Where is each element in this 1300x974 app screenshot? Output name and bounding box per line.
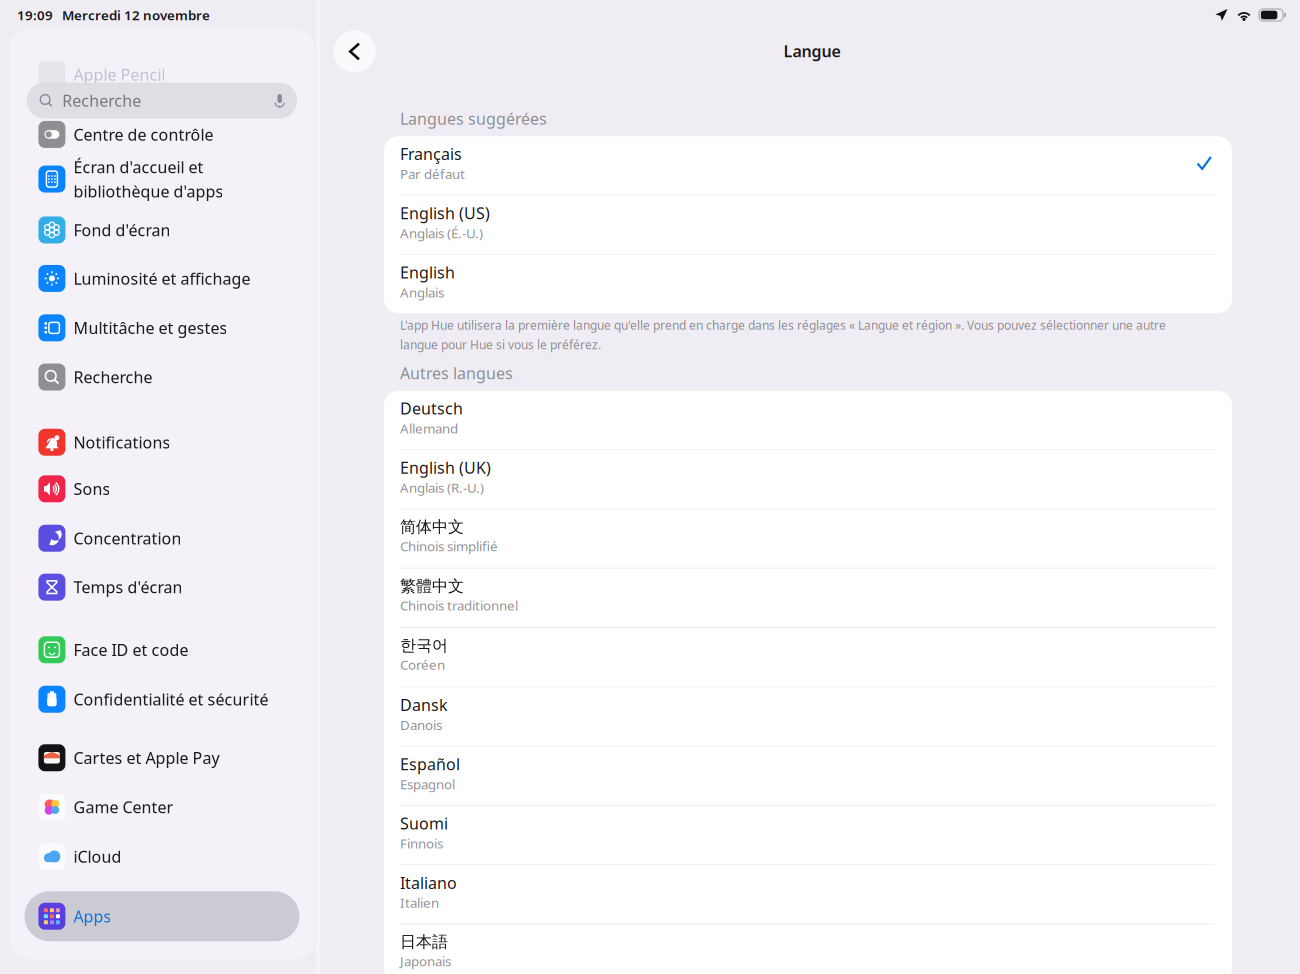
button[interactable]: Deutsch xyxy=(384,391,1232,449)
staticText: Recherche xyxy=(73,366,152,388)
staticText: Italiano xyxy=(400,872,457,893)
staticText: 19:09 xyxy=(17,6,53,24)
staticText: Concentration xyxy=(73,528,181,549)
staticText: Par défaut xyxy=(400,165,465,183)
staticText: 繁體中文 xyxy=(400,576,464,596)
staticText: Dansk xyxy=(400,694,448,715)
button[interactable]: Français xyxy=(384,136,1232,194)
staticText: Français xyxy=(400,143,462,164)
staticText: English xyxy=(400,262,455,283)
staticText: English (UK) xyxy=(400,457,491,478)
staticText: L'app Hue utilisera la première langue q… xyxy=(400,317,1166,333)
staticText: Chinois simplifié xyxy=(400,537,498,555)
button[interactable]: Retour xyxy=(332,28,378,74)
staticText: Cartes et Apple Pay xyxy=(73,747,219,768)
button[interactable]: English xyxy=(384,255,1232,313)
staticText: bibliothèque d'apps xyxy=(73,181,223,202)
button[interactable]: Italiano xyxy=(384,865,1232,923)
button[interactable]: iCloud xyxy=(9,832,314,881)
staticText: 简体中文 xyxy=(400,517,464,537)
button[interactable]: Centre de contrôle xyxy=(9,110,314,159)
button[interactable]: Temps d'écran xyxy=(9,562,314,612)
staticText: Apple Intelligence et Siri xyxy=(73,5,255,26)
button[interactable]: Apps xyxy=(9,892,314,941)
staticText: Allemand xyxy=(400,419,458,437)
staticText: 한국어 xyxy=(400,636,448,655)
staticText: Anglais xyxy=(400,283,444,301)
button[interactable]: Cartes et Apple Pay xyxy=(9,733,314,782)
staticText: Multitâche et gestes xyxy=(73,317,227,338)
staticText: Autres langues xyxy=(400,362,513,384)
staticText: Italien xyxy=(400,894,439,911)
staticText: Mercredi 12 novembre xyxy=(62,6,210,24)
staticText: Centre de contrôle xyxy=(73,124,213,145)
button[interactable]: Confidentialité et sécurité xyxy=(9,675,314,724)
button[interactable]: Recherche xyxy=(27,83,297,119)
staticText: Fond d'écran xyxy=(73,219,170,240)
staticText: Apple Pencil xyxy=(73,64,165,85)
staticText: Temps d'écran xyxy=(73,576,182,598)
staticText: Espagnol xyxy=(400,775,455,793)
staticText: Español xyxy=(400,753,460,775)
staticText: Apps xyxy=(73,906,111,927)
button[interactable]: Face ID et code xyxy=(9,625,314,674)
staticText: Deutsch xyxy=(400,398,463,419)
button[interactable]: Sons xyxy=(9,464,314,513)
staticText: iCloud xyxy=(73,846,121,867)
button[interactable]: English (UK) xyxy=(384,450,1232,508)
staticText: Anglais (É.-U.) xyxy=(400,224,483,242)
staticText: Luminosité et affichage xyxy=(73,268,250,289)
button[interactable]: English (US) xyxy=(384,195,1232,254)
staticText: English (US) xyxy=(400,202,490,224)
staticText: Japonais xyxy=(400,952,451,970)
staticText: 日本語 xyxy=(400,932,448,952)
button[interactable]: Luminosité et affichage xyxy=(9,254,314,303)
staticText: Finnois xyxy=(400,834,443,852)
staticText: Écran d'accueil et xyxy=(73,156,203,177)
button[interactable]: Dansk xyxy=(384,687,1232,746)
staticText: Confidentialité et sécurité xyxy=(73,689,268,710)
button[interactable]: Suomi xyxy=(384,806,1232,864)
button[interactable]: 日本語 xyxy=(384,924,1232,974)
button[interactable]: 한국어 xyxy=(384,628,1232,686)
staticText: Coréen xyxy=(400,656,445,673)
staticText: Langue xyxy=(783,40,840,62)
staticText: Chinois traditionnel xyxy=(400,596,518,614)
staticText: langue pour Hue si vous le préférez. xyxy=(400,337,601,352)
button[interactable]: Concentration xyxy=(9,514,314,563)
staticText: Recherche xyxy=(62,90,141,111)
staticText: Face ID et code xyxy=(73,639,188,660)
staticText: Sons xyxy=(73,478,110,499)
staticText: Langues suggérées xyxy=(400,108,547,129)
staticText: Suomi xyxy=(400,813,448,834)
button[interactable]: 繁體中文 xyxy=(384,569,1232,627)
staticText: Danois xyxy=(400,716,442,734)
button[interactable]: 简体中文 xyxy=(384,509,1232,568)
staticText: Game Center xyxy=(73,796,173,818)
button[interactable]: Écran d'accueil et xyxy=(9,143,314,215)
staticText: Notifications xyxy=(73,432,170,453)
button[interactable]: Multitâche et gestes xyxy=(9,303,314,352)
button[interactable]: Game Center xyxy=(9,782,314,832)
button[interactable]: Fond d'écran xyxy=(9,205,314,255)
staticText: Anglais (R.-U.) xyxy=(400,479,484,496)
button[interactable]: Recherche xyxy=(9,352,314,402)
button[interactable]: Español xyxy=(384,747,1232,805)
button[interactable]: Notifications xyxy=(9,418,314,467)
